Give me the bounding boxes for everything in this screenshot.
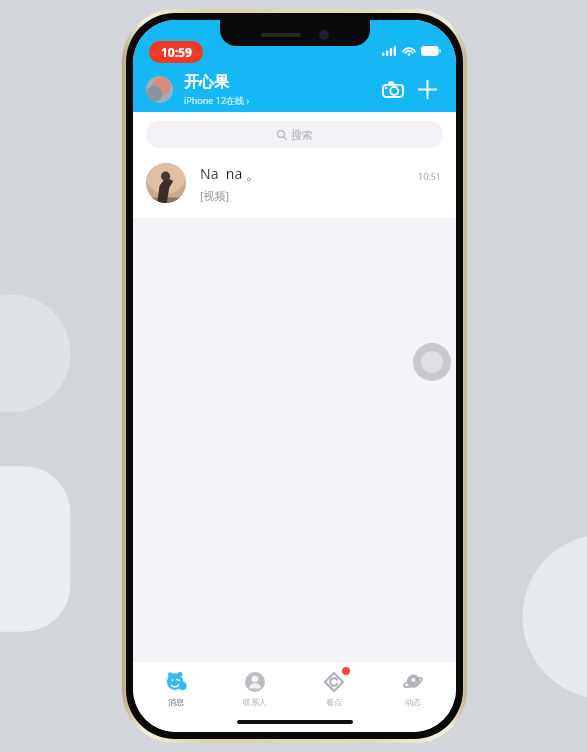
button[interactable]: 看点	[298, 670, 370, 707]
staticText: [视频]	[200, 188, 230, 203]
staticText: 看点	[326, 697, 342, 707]
staticText: 开心果	[184, 73, 229, 92]
button[interactable]: 搜索	[146, 121, 443, 148]
staticText: 10:59	[161, 44, 192, 60]
button[interactable]: AssistiveTouch	[413, 343, 451, 381]
staticText: 联系人	[243, 697, 267, 707]
staticText: 消息	[168, 697, 184, 707]
button[interactable]: Profile avatar	[146, 76, 173, 103]
button[interactable]: Camera	[376, 72, 410, 106]
button[interactable]: 联系人	[219, 670, 291, 707]
staticText: 动态	[405, 697, 421, 707]
staticText: Na na 。	[200, 164, 260, 183]
button[interactable]: Na na 。	[133, 156, 456, 210]
staticText: iPhone 12在线 ›	[184, 94, 250, 106]
button[interactable]: 动态	[377, 670, 449, 707]
button[interactable]: 消息	[140, 670, 212, 707]
staticText: 搜索	[291, 128, 313, 142]
button[interactable]: Add	[410, 72, 444, 106]
button[interactable]: 开心果	[184, 73, 376, 106]
staticText: 10:51	[418, 170, 442, 182]
